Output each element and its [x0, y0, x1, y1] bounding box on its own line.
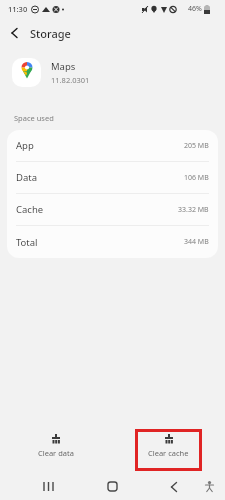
button[interactable]: [170, 482, 178, 492]
staticText: 46%: [188, 4, 202, 14]
button[interactable]: [10, 28, 20, 38]
staticText: Clear cache: [148, 448, 189, 458]
staticText: 344 MB: [184, 237, 209, 247]
button[interactable]: Clear cache: [142, 427, 195, 462]
staticText: 11.82.0301: [51, 75, 90, 85]
staticText: Data: [16, 171, 38, 184]
staticText: 33.32 MB: [178, 205, 209, 215]
staticText: 106 MB: [184, 173, 209, 183]
button[interactable]: Cache: [7, 194, 218, 226]
staticText: Maps: [51, 60, 76, 73]
button[interactable]: App: [7, 130, 218, 162]
button[interactable]: [205, 481, 214, 492]
staticText: Storage: [30, 26, 71, 41]
staticText: Total: [16, 236, 38, 249]
button[interactable]: [108, 482, 117, 491]
staticText: Clear data: [38, 448, 74, 458]
staticText: Space used: [14, 113, 54, 123]
staticText: App: [16, 139, 34, 152]
button[interactable]: [43, 482, 54, 491]
button[interactable]: Data: [7, 162, 218, 194]
staticText: 205 MB: [184, 141, 209, 151]
button[interactable]: Total: [7, 226, 218, 258]
staticText: Cache: [16, 203, 44, 216]
button[interactable]: Clear data: [32, 427, 80, 462]
staticText: 11:30: [8, 4, 28, 14]
